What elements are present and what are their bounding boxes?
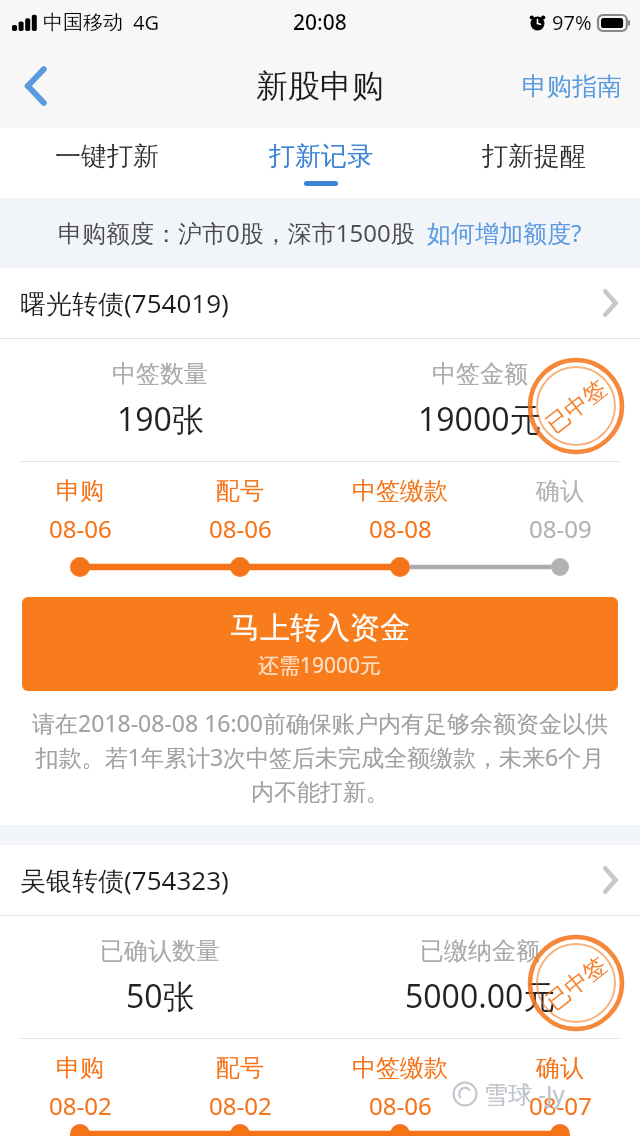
button[interactable]: 打新记录 — [214, 128, 427, 198]
staticText: 4G — [133, 9, 159, 36]
staticText: 中国移动 — [43, 10, 123, 35]
staticText: 雪球 -Jy — [484, 1077, 565, 1110]
staticText: 20:08 — [293, 8, 347, 37]
other: Details — [602, 289, 618, 317]
staticText: 申购指南 — [522, 71, 622, 102]
staticText: 已确认数量 — [100, 936, 220, 966]
staticText: 配号 — [216, 476, 264, 506]
staticText: 吴银转债(754323) — [20, 862, 229, 898]
button[interactable]: 打新提醒 — [427, 128, 640, 198]
staticText: 马上转入资金 — [230, 609, 410, 647]
staticText: 已缴纳金额 — [420, 936, 540, 966]
staticText: 申购额度：沪市0股，深市1500股 — [58, 216, 415, 249]
staticText: 97% — [552, 9, 592, 36]
staticText: 08-06 — [49, 512, 112, 545]
staticText: 08-06 — [369, 1089, 432, 1122]
staticText: 中签缴款 — [352, 476, 448, 506]
staticText: 一键打新 — [55, 140, 159, 173]
staticText: 配号 — [216, 1053, 264, 1083]
staticText: 中签金额 — [432, 359, 528, 389]
staticText: 新股申购 — [256, 66, 384, 106]
staticText: 中签数量 — [112, 359, 208, 389]
button[interactable]: 曙光转债(754019) — [0, 268, 640, 338]
staticText: 08-08 — [369, 512, 432, 545]
staticText: 如何增加额度? — [427, 216, 582, 249]
other: Details — [602, 866, 618, 894]
staticText: 中签缴款 — [352, 1053, 448, 1083]
staticText: 19000元 — [418, 397, 542, 441]
staticText: 50张 — [126, 974, 195, 1018]
staticText: 还需19000元 — [258, 651, 382, 680]
button[interactable]: 马上转入资金 — [22, 597, 618, 691]
button[interactable]: Back — [0, 44, 72, 128]
staticText: 08-02 — [209, 1089, 272, 1122]
staticText: 5000.00元 — [405, 974, 556, 1018]
staticText: 打新记录 — [269, 140, 373, 173]
staticText: 申购 — [56, 1053, 104, 1083]
staticText: 190张 — [117, 397, 204, 441]
button[interactable]: 申购指南 — [504, 44, 640, 128]
button[interactable]: 一键打新 — [0, 128, 214, 198]
staticText: 08-09 — [529, 512, 592, 545]
staticText: 08-02 — [49, 1089, 112, 1122]
button[interactable]: 吴银转债(754323) — [0, 845, 640, 915]
staticText: 已中签 — [540, 374, 613, 439]
staticText: 确认 — [536, 1053, 584, 1083]
staticText: 申购 — [56, 476, 104, 506]
staticText: 请在2018-08-08 16:00前确保账户内有足够余额资金以供扣款。若1年累… — [26, 707, 614, 807]
staticText: 确认 — [536, 476, 584, 506]
button[interactable]: 如何增加额度? — [427, 216, 582, 249]
staticText: 08-07 — [529, 1089, 592, 1122]
staticText: 08-06 — [209, 512, 272, 545]
staticText: 曙光转债(754019) — [20, 285, 229, 321]
staticText: 打新提醒 — [482, 140, 586, 173]
staticText: 已中签 — [540, 951, 613, 1016]
